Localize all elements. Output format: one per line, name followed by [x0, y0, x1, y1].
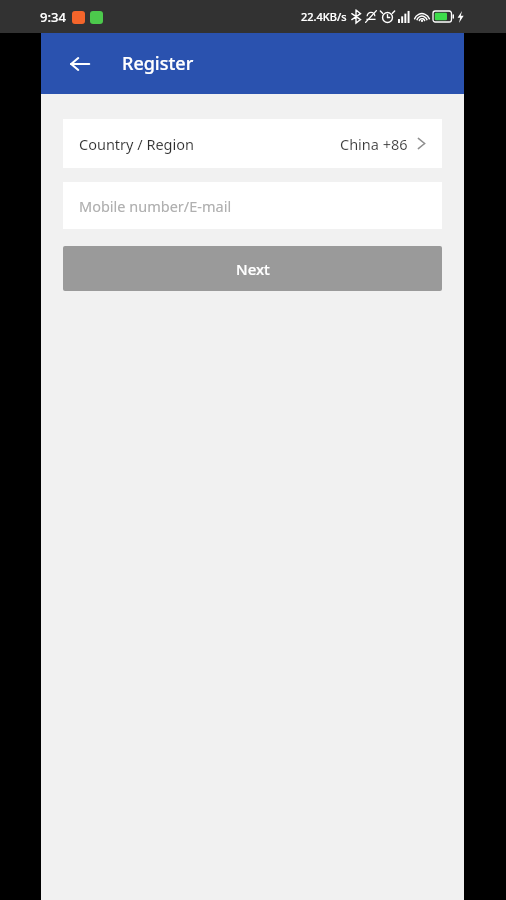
- button[interactable]: Country / Region: [63, 119, 442, 168]
- button[interactable]: Next: [63, 246, 442, 291]
- staticText: Mobile number/E-mail: [79, 196, 232, 216]
- button[interactable]: Back: [60, 44, 100, 84]
- staticText: China +86: [340, 134, 408, 154]
- staticText: 22.4KB/s: [301, 9, 347, 24]
- staticText: Country / Region: [79, 134, 194, 154]
- button[interactable]: Mobile number/E-mail: [63, 182, 442, 229]
- staticText: 9:34: [40, 8, 66, 26]
- staticText: Next: [236, 259, 270, 279]
- staticText: Register: [122, 51, 194, 76]
